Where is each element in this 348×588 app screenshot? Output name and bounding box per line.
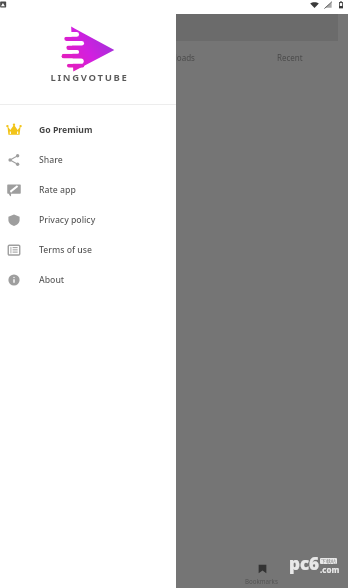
button[interactable]: Share xyxy=(0,145,176,175)
staticText: Videos xyxy=(46,52,71,63)
button[interactable]: Rate app xyxy=(0,175,176,205)
button[interactable]: More xyxy=(290,554,348,588)
staticText: Downloads xyxy=(153,52,195,63)
staticText: .com xyxy=(320,564,340,575)
staticText: Recent xyxy=(277,52,303,63)
staticText: 下载站 xyxy=(321,558,336,564)
button[interactable]: Favourites xyxy=(174,554,232,588)
staticText: LINGVOTUBE xyxy=(50,71,129,84)
staticText: Rate app xyxy=(39,184,76,196)
button[interactable]: Downloads xyxy=(116,41,232,73)
staticText: pc6 xyxy=(289,552,320,575)
button[interactable]: Videos xyxy=(0,41,116,73)
staticText: Go Premium xyxy=(39,124,93,136)
button[interactable]: Terms of use xyxy=(0,235,176,265)
button[interactable]: Bookmarks xyxy=(232,554,290,588)
staticText: About xyxy=(39,274,65,286)
button[interactable]: About xyxy=(0,265,176,295)
staticText: Terms of use xyxy=(39,244,92,256)
button[interactable]: Recent xyxy=(232,41,348,73)
staticText: Share xyxy=(39,154,63,166)
staticText: Privacy policy xyxy=(39,214,96,226)
staticText: Bookmarks xyxy=(245,577,278,585)
button[interactable]: Go Premium xyxy=(0,115,176,145)
button[interactable]: Privacy policy xyxy=(0,205,176,235)
